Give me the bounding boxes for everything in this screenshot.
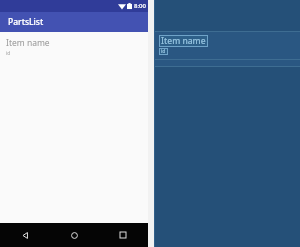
button[interactable]: Back [10, 223, 40, 247]
button[interactable]: Recent apps [108, 223, 138, 247]
button[interactable]: PartsList [0, 12, 148, 32]
staticText: PartsList [8, 16, 44, 28]
staticText: Item name [6, 37, 50, 49]
button[interactable]: Home [59, 223, 89, 247]
staticText: id [6, 50, 11, 57]
button[interactable]: Item name [0, 32, 148, 60]
staticText: id [161, 48, 166, 55]
staticText: Item name [161, 35, 206, 47]
staticText: 8:00 [134, 2, 146, 10]
